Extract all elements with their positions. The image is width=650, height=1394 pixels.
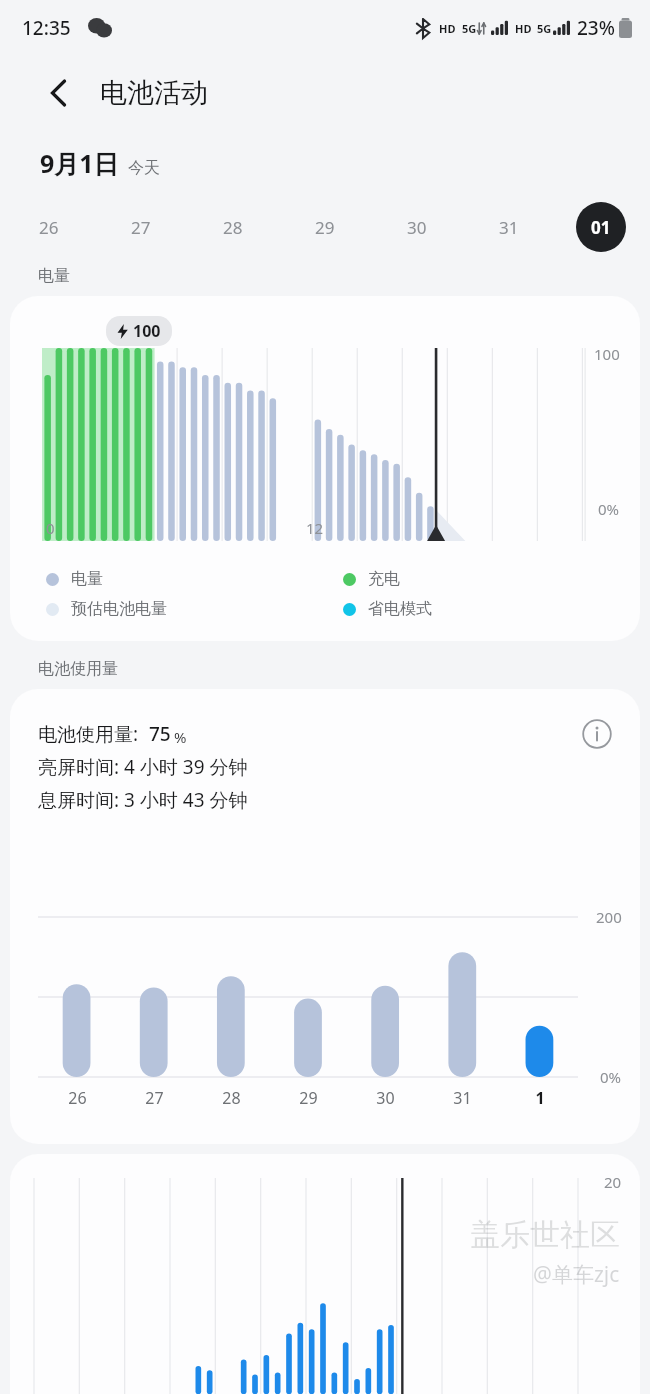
button[interactable]: 电池使用量: (10, 689, 640, 1144)
staticText: 30 (407, 216, 427, 239)
staticText: 1 (535, 1087, 545, 1109)
staticText: 5G (537, 21, 552, 36)
button[interactable]: 100 (10, 296, 640, 641)
staticText: 27 (131, 216, 151, 239)
button[interactable]: 20 (10, 1154, 640, 1394)
staticText: 26 (39, 216, 59, 239)
staticText: 75 (149, 721, 171, 747)
staticText: 30 (376, 1087, 395, 1109)
staticText: 0 (46, 518, 55, 538)
button[interactable]: 26 (24, 202, 74, 252)
staticText: 26 (68, 1087, 87, 1109)
staticText: 27 (145, 1087, 164, 1109)
staticText: 电池使用量 (38, 659, 118, 679)
button[interactable]: 30 (392, 202, 442, 252)
button[interactable]: 29 (300, 202, 350, 252)
staticText: 28 (223, 216, 243, 239)
staticText: 29 (299, 1087, 318, 1109)
staticText: HD (515, 21, 532, 36)
staticText: 01 (591, 216, 611, 239)
staticText: 9月1日 (40, 146, 119, 180)
staticText: 23% (577, 15, 615, 41)
staticText: 0% (600, 1067, 622, 1087)
staticText: 200 (596, 907, 622, 927)
staticText: 电池活动 (100, 76, 208, 110)
staticText: 息屏时间: 3 小时 43 分钟 (38, 787, 248, 813)
staticText: 20 (604, 1172, 622, 1192)
staticText: 31 (453, 1087, 472, 1109)
staticText: 今天 (128, 158, 160, 178)
staticText: @单车zjc (533, 1260, 620, 1289)
staticText: 预估电池电量 (71, 599, 167, 619)
staticText: 电池使用量: (38, 721, 139, 747)
staticText: 盖乐世社区 (470, 1216, 620, 1254)
staticText: 12:35 (22, 15, 71, 41)
staticText: 亮屏时间: 4 小时 39 分钟 (38, 754, 248, 780)
button[interactable]: 01 (576, 202, 626, 252)
button[interactable]: 31 (484, 202, 534, 252)
staticText: 31 (499, 216, 519, 239)
staticText: 省电模式 (368, 599, 432, 619)
staticText: 5G (462, 21, 477, 36)
button[interactable]: 28 (208, 202, 258, 252)
staticText: % (174, 727, 187, 747)
staticText: 充电 (368, 569, 400, 589)
staticText: 100 (133, 320, 161, 342)
staticText: 100 (594, 344, 620, 364)
button[interactable]: 返回 (36, 71, 80, 115)
staticText: 12 (306, 518, 324, 538)
button[interactable]: 27 (116, 202, 166, 252)
staticText: 0% (598, 499, 620, 519)
button[interactable]: 信息 (574, 711, 620, 757)
staticText: 29 (315, 216, 335, 239)
staticText: 电量 (71, 569, 103, 589)
staticText: 28 (222, 1087, 241, 1109)
staticText: HD (439, 21, 456, 36)
staticText: 电量 (38, 266, 70, 286)
